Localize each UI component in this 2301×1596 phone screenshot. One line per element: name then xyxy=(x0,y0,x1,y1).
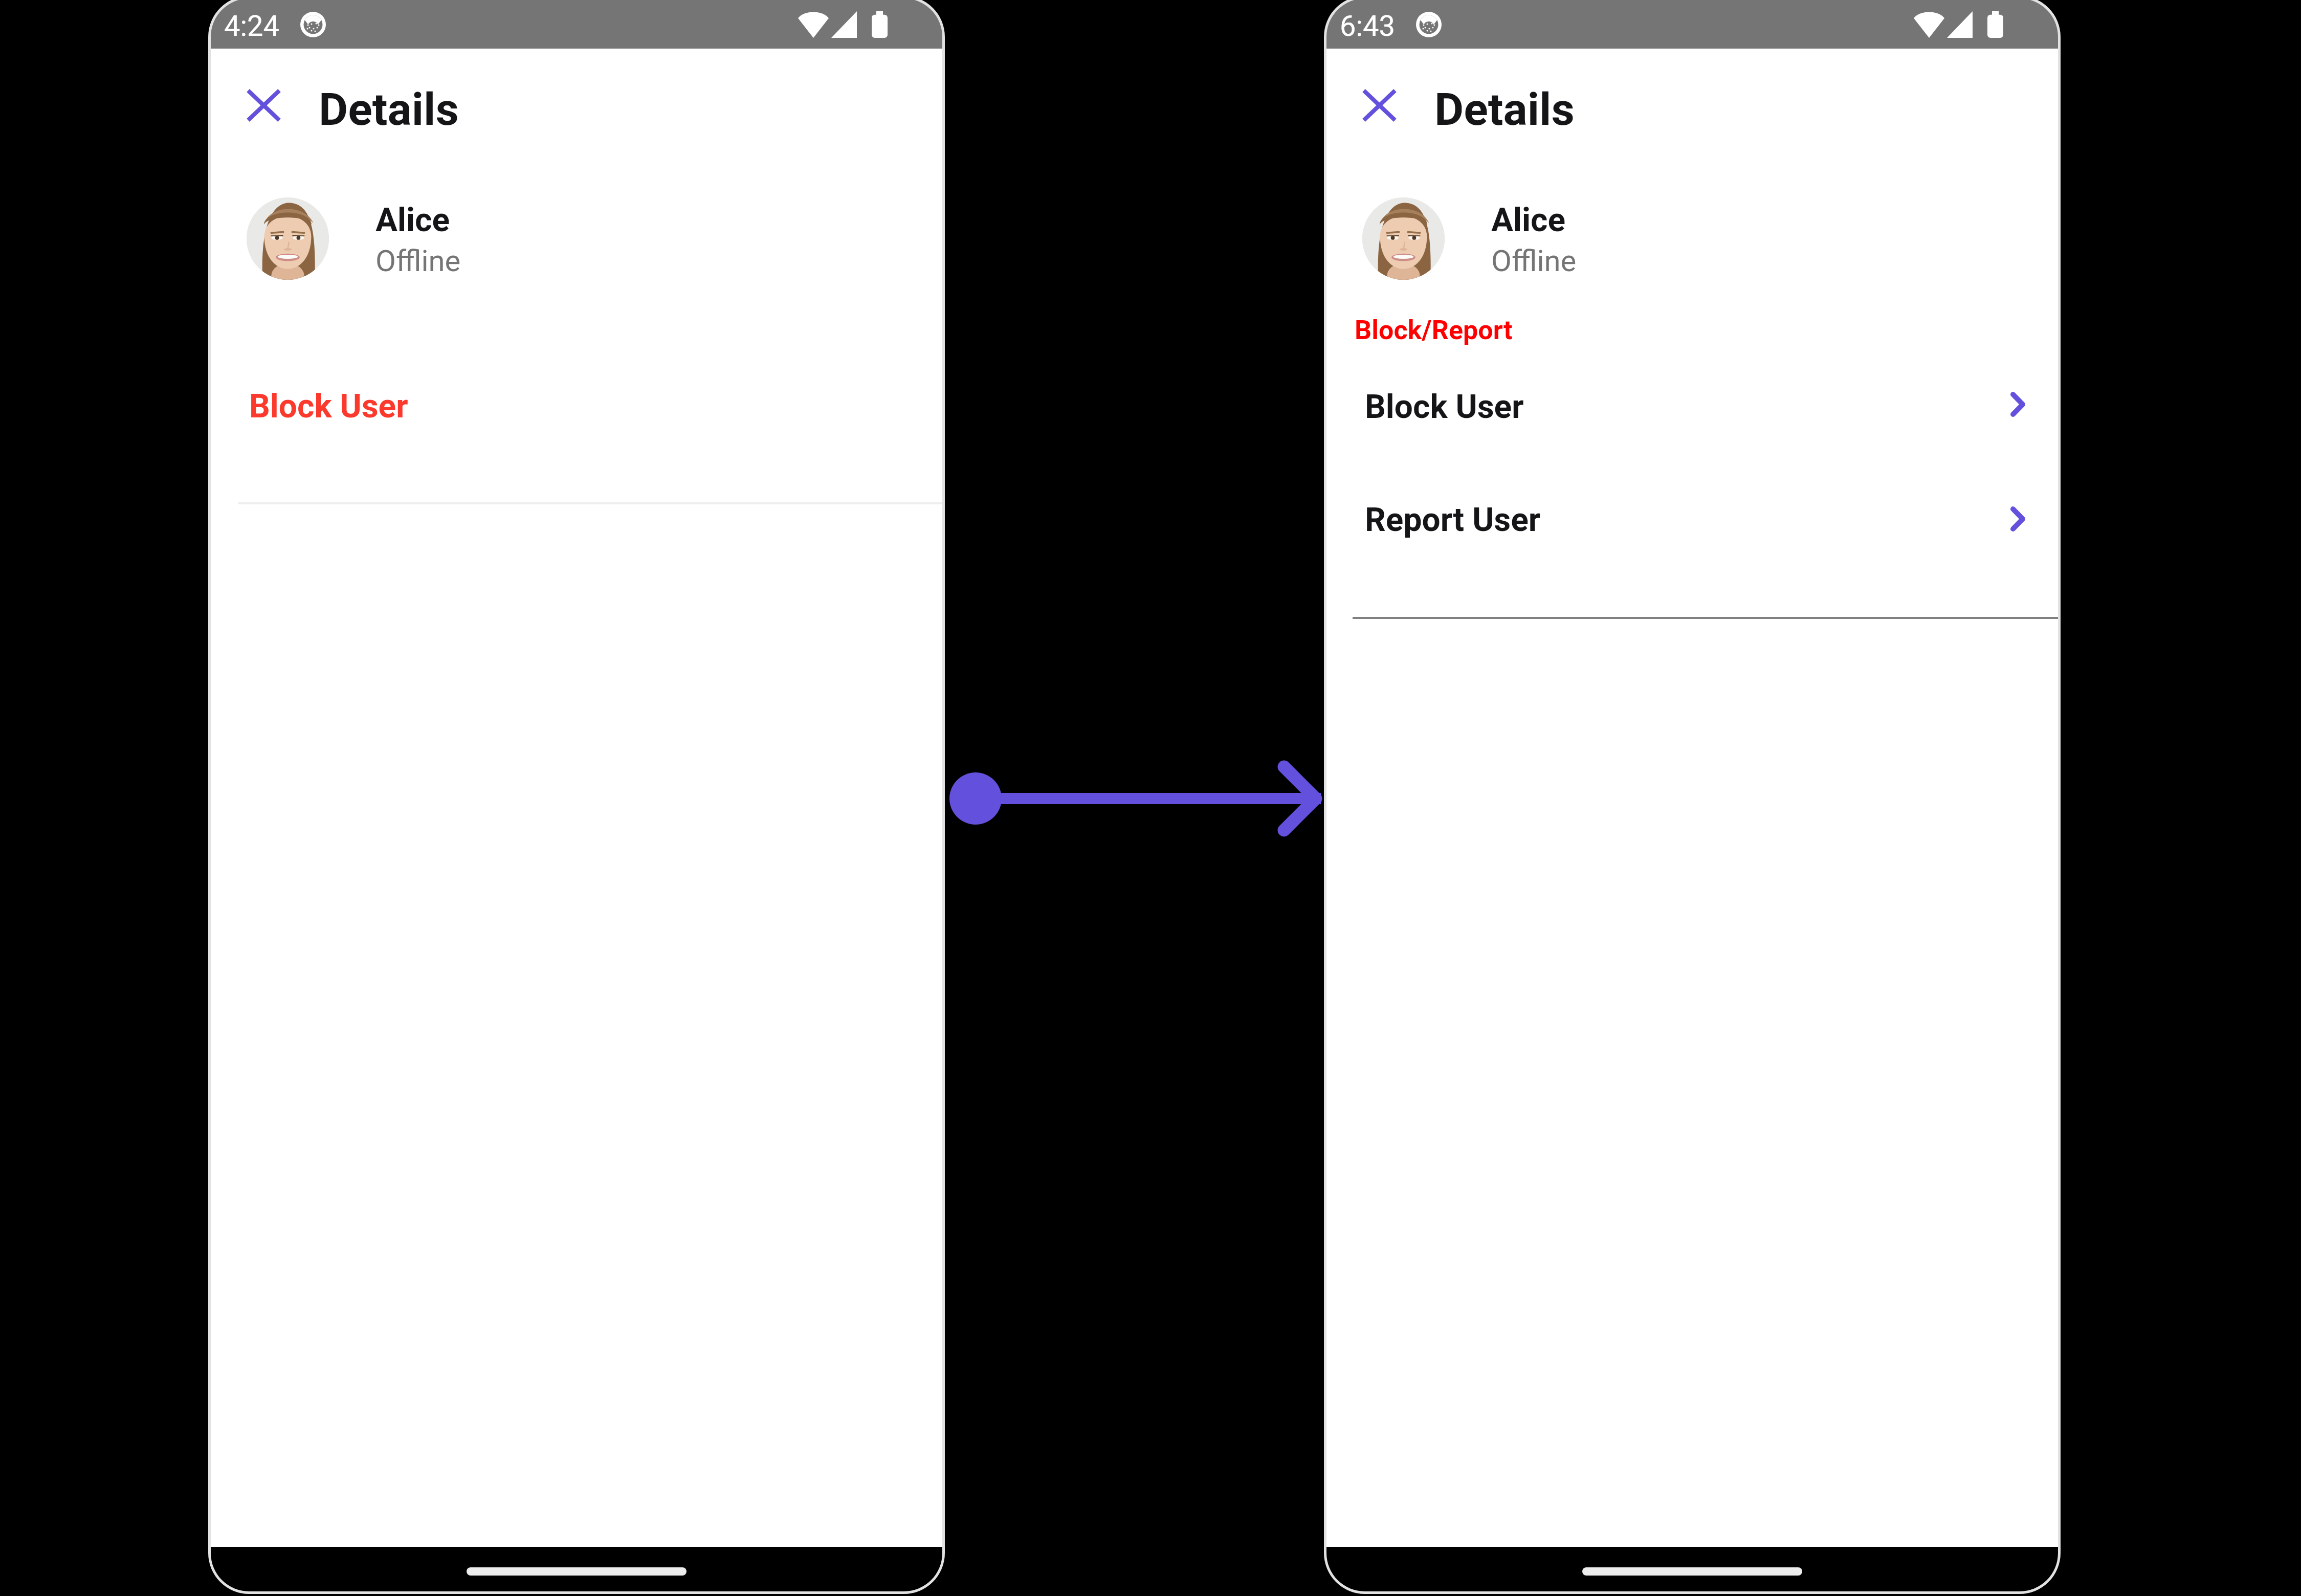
staticText: Block User xyxy=(249,387,408,426)
staticText: Alice xyxy=(1491,201,1566,239)
button[interactable]: Close xyxy=(240,82,286,128)
button[interactable]: Report User xyxy=(1326,478,2058,555)
staticText: 4:24 xyxy=(224,9,279,43)
staticText: Details xyxy=(1434,83,1575,136)
staticText: Report User xyxy=(1365,501,1541,539)
button[interactable]: Alice xyxy=(211,189,942,289)
staticText: 6:43 xyxy=(1340,9,1395,43)
button[interactable]: Block User xyxy=(211,364,942,441)
staticText: Offline xyxy=(1491,243,1577,278)
button[interactable]: Close xyxy=(1356,82,1402,128)
staticText: Alice xyxy=(375,201,450,239)
button[interactable]: Block User xyxy=(1326,364,2058,441)
staticText: Details xyxy=(319,83,459,136)
staticText: Block/Report xyxy=(1355,315,1513,346)
staticText: Block User xyxy=(1365,388,1524,426)
staticText: Offline xyxy=(375,243,461,278)
button[interactable]: Alice xyxy=(1326,189,2058,289)
